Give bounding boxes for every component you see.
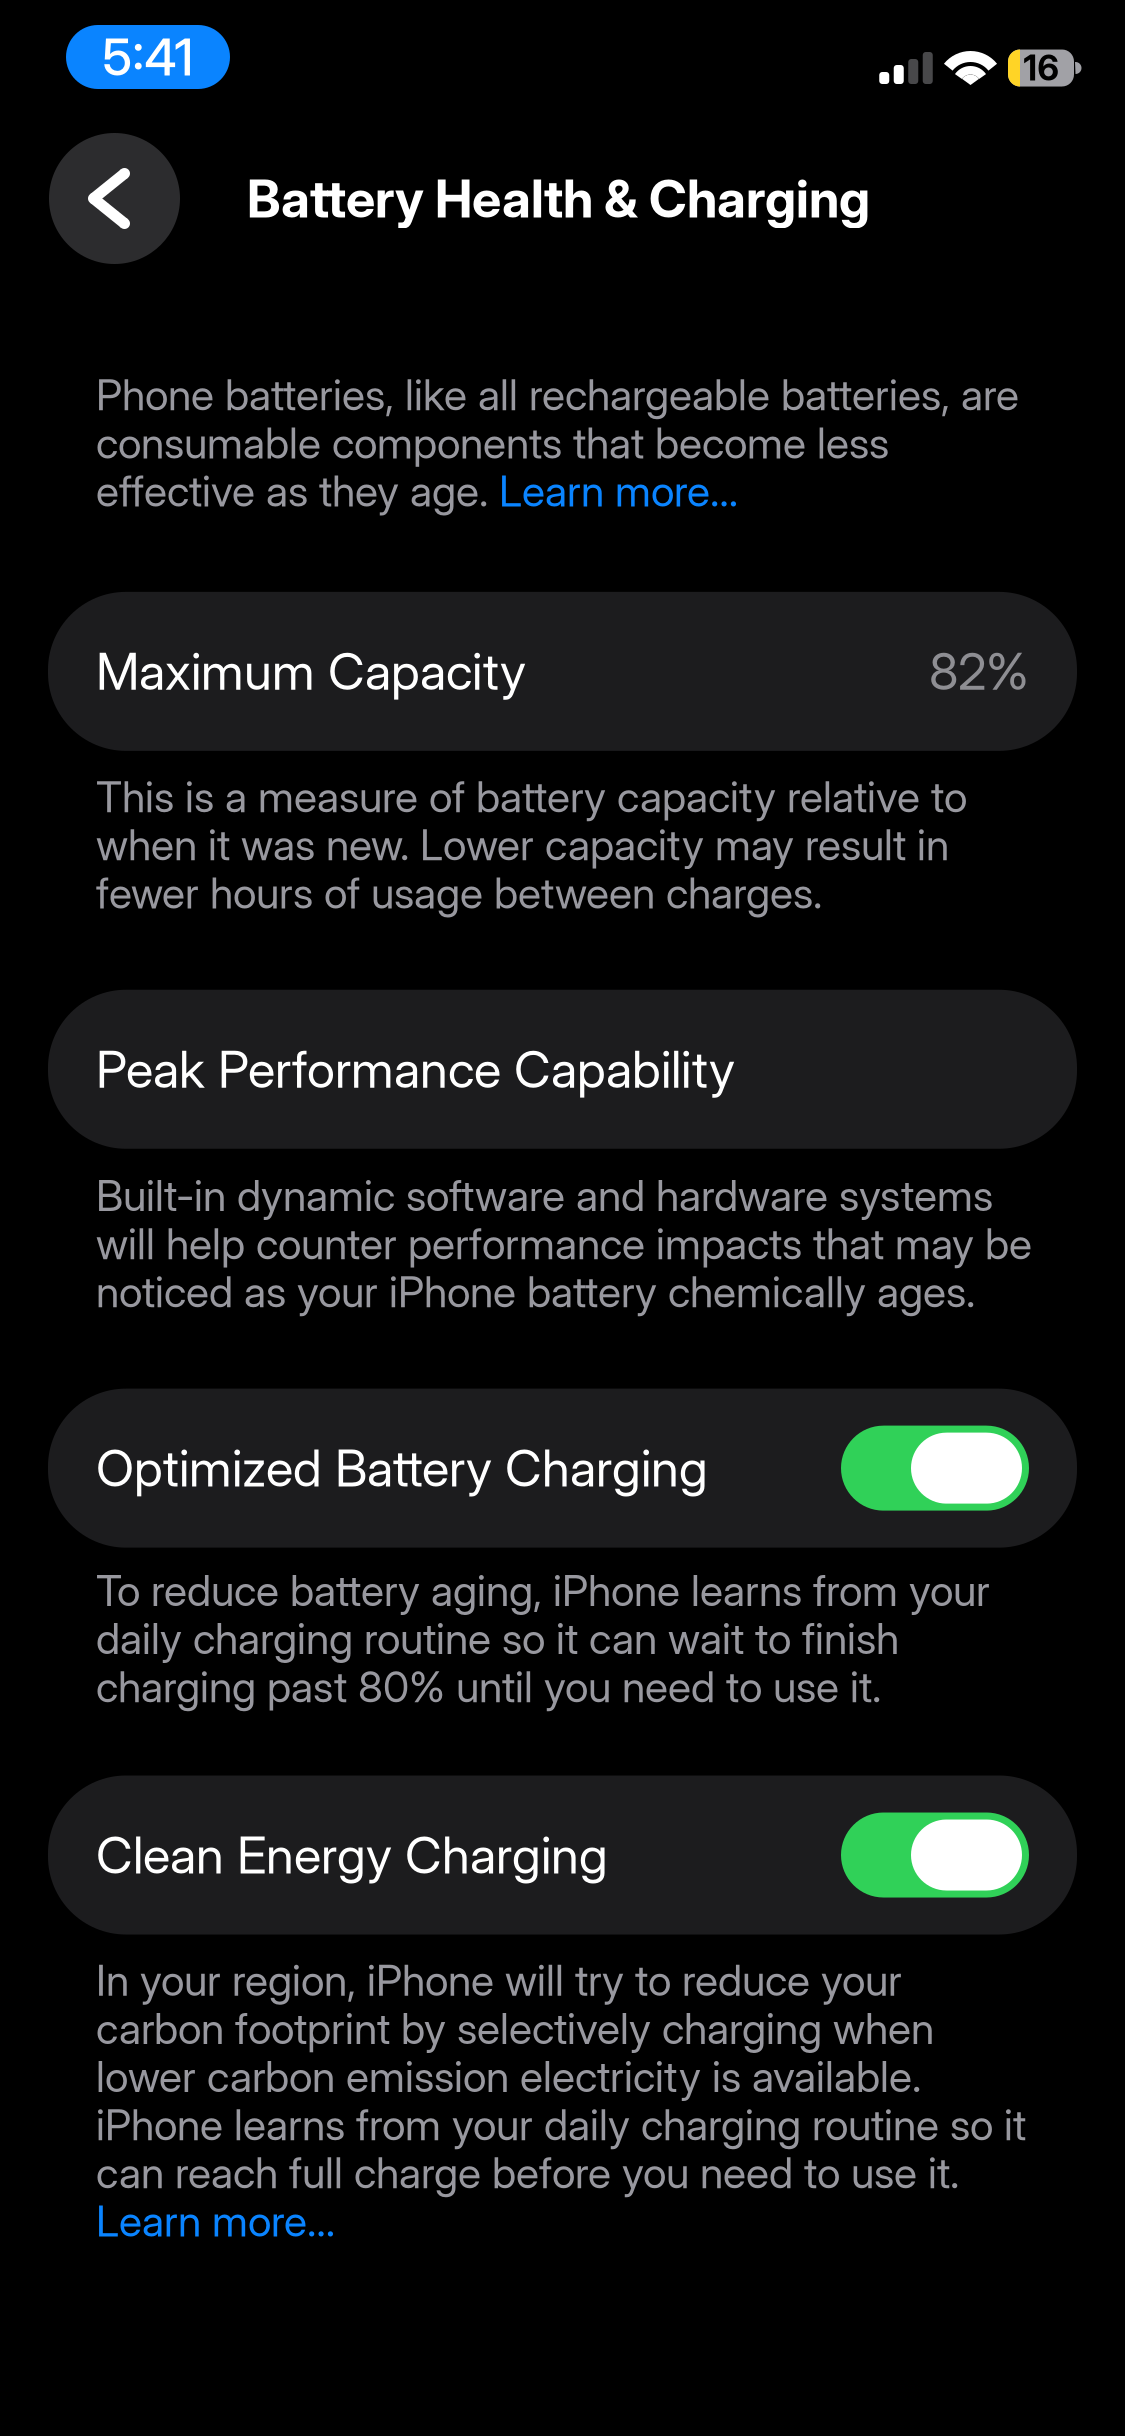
button[interactable]: Maximum Capacity [48, 592, 1077, 751]
staticText: To reduce battery aging, iPhone learns f… [96, 1565, 990, 1712]
staticText: Clean Energy Charging [96, 1824, 608, 1886]
staticText: In your region, iPhone will try to reduc… [96, 1954, 1026, 2247]
staticText: 82% [929, 641, 1029, 702]
button[interactable]: Optimized Battery Charging [48, 1389, 1077, 1548]
staticText: Battery Health & Charging [247, 167, 870, 230]
staticText: Phone batteries, like all rechargeable b… [96, 369, 1019, 517]
staticText: 16 [1023, 47, 1058, 89]
staticText: Maximum Capacity [96, 641, 526, 702]
staticText: This is a measure of battery capacity re… [96, 771, 967, 919]
button[interactable]: Back [49, 133, 180, 264]
staticText: Peak Performance Capability [96, 1039, 735, 1100]
button[interactable]: In your region, iPhone will try to reduc… [96, 1954, 1036, 2247]
button[interactable]: Peak Performance Capability [48, 990, 1077, 1149]
button[interactable]: Clean Energy Charging [48, 1775, 1077, 1934]
staticText: 5:41 [102, 26, 193, 88]
staticText: Optimized Battery Charging [96, 1437, 708, 1499]
staticText: Built-in dynamic software and hardware s… [96, 1170, 1032, 1318]
button[interactable]: Phone batteries, like all rechargeable b… [96, 369, 1036, 517]
